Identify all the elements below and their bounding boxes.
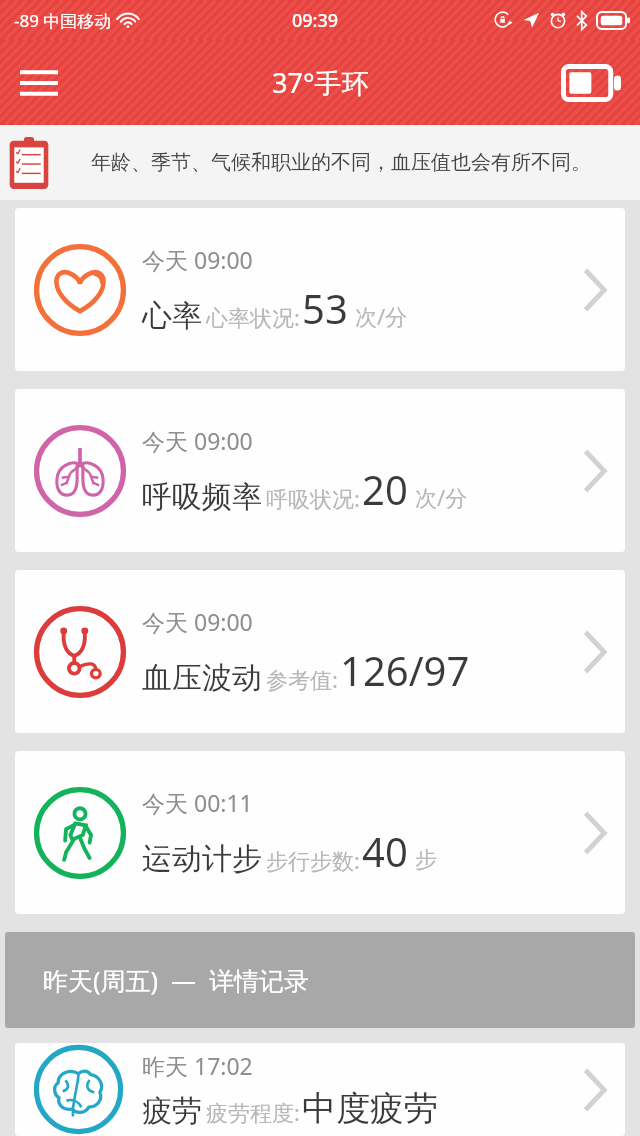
staticText: 年龄、季节、气候和职业的不同，血压值也会有所不同。 [60, 150, 622, 175]
staticText: 40 [362, 824, 408, 878]
staticText: 步行步数: [266, 845, 360, 875]
staticText: 呼吸状况: [266, 483, 360, 513]
staticText: 参考值: [266, 664, 338, 694]
staticText: 次/分 [415, 482, 468, 512]
staticText: 今天 09:00 [142, 606, 253, 637]
staticText: 20 [362, 462, 408, 516]
staticText: 心率 [142, 297, 202, 335]
staticText: 09:39 [292, 8, 339, 33]
staticText: 昨天(周五) — 详情记录 [43, 963, 310, 997]
button[interactable]: Battery status [556, 55, 626, 111]
button[interactable]: 昨天 17:02 [15, 1043, 625, 1136]
staticText: 今天 00:11 [142, 787, 253, 818]
staticText: 心率状况: [206, 302, 300, 332]
staticText: 中度疲劳 [302, 1087, 438, 1130]
staticText: 疲劳程度: [206, 1097, 300, 1127]
staticText: 37°手环 [272, 64, 369, 101]
button[interactable]: 昨天(周五) — 详情记录 [5, 932, 635, 1028]
staticText: 今天 09:00 [142, 244, 253, 275]
staticText: -89 中国移动 [14, 9, 112, 32]
button[interactable]: 今天 09:00 [15, 208, 625, 371]
button[interactable]: 今天 09:00 [15, 570, 625, 733]
staticText: 步 [415, 846, 437, 874]
button[interactable]: 今天 09:00 [15, 389, 625, 552]
staticText: 昨天 17:02 [142, 1050, 253, 1081]
staticText: 疲劳 [142, 1092, 202, 1130]
staticText: 53 [302, 281, 348, 335]
button[interactable]: 今天 00:11 [15, 751, 625, 914]
staticText: 运动计步 [142, 840, 262, 878]
staticText: 呼吸频率 [142, 478, 262, 516]
staticText: 次/分 [355, 301, 408, 331]
staticText: 今天 09:00 [142, 425, 253, 456]
button[interactable]: Menu [10, 54, 68, 112]
staticText: 126/97 [340, 643, 470, 697]
staticText: 血压波动 [142, 659, 262, 697]
